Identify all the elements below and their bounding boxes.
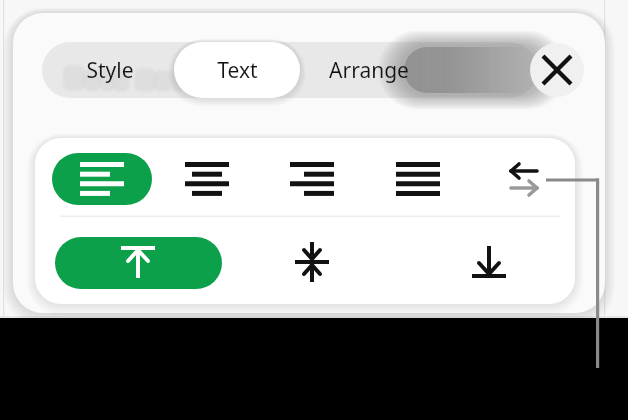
button[interactable]: Align bottom (455, 237, 525, 289)
button[interactable]: Align middle (278, 237, 348, 289)
button[interactable]: Text direction (490, 153, 560, 205)
staticText: Style (86, 56, 134, 85)
button[interactable]: Align right (278, 153, 348, 205)
staticText: Arrange (329, 56, 409, 85)
button[interactable]: Align center (172, 153, 242, 205)
button[interactable]: Style (48, 44, 172, 96)
button[interactable]: Align left (52, 153, 152, 205)
staticText: Text (217, 56, 258, 85)
button[interactable]: Justify (383, 153, 453, 205)
staticText: Style (48, 44, 96, 73)
button[interactable]: Close (530, 43, 584, 97)
button[interactable]: Align top (55, 237, 222, 289)
button[interactable]: Arrange (302, 44, 436, 96)
button[interactable]: Text (174, 44, 300, 96)
staticText: Text (174, 44, 215, 73)
staticText: Arrange (302, 44, 382, 73)
